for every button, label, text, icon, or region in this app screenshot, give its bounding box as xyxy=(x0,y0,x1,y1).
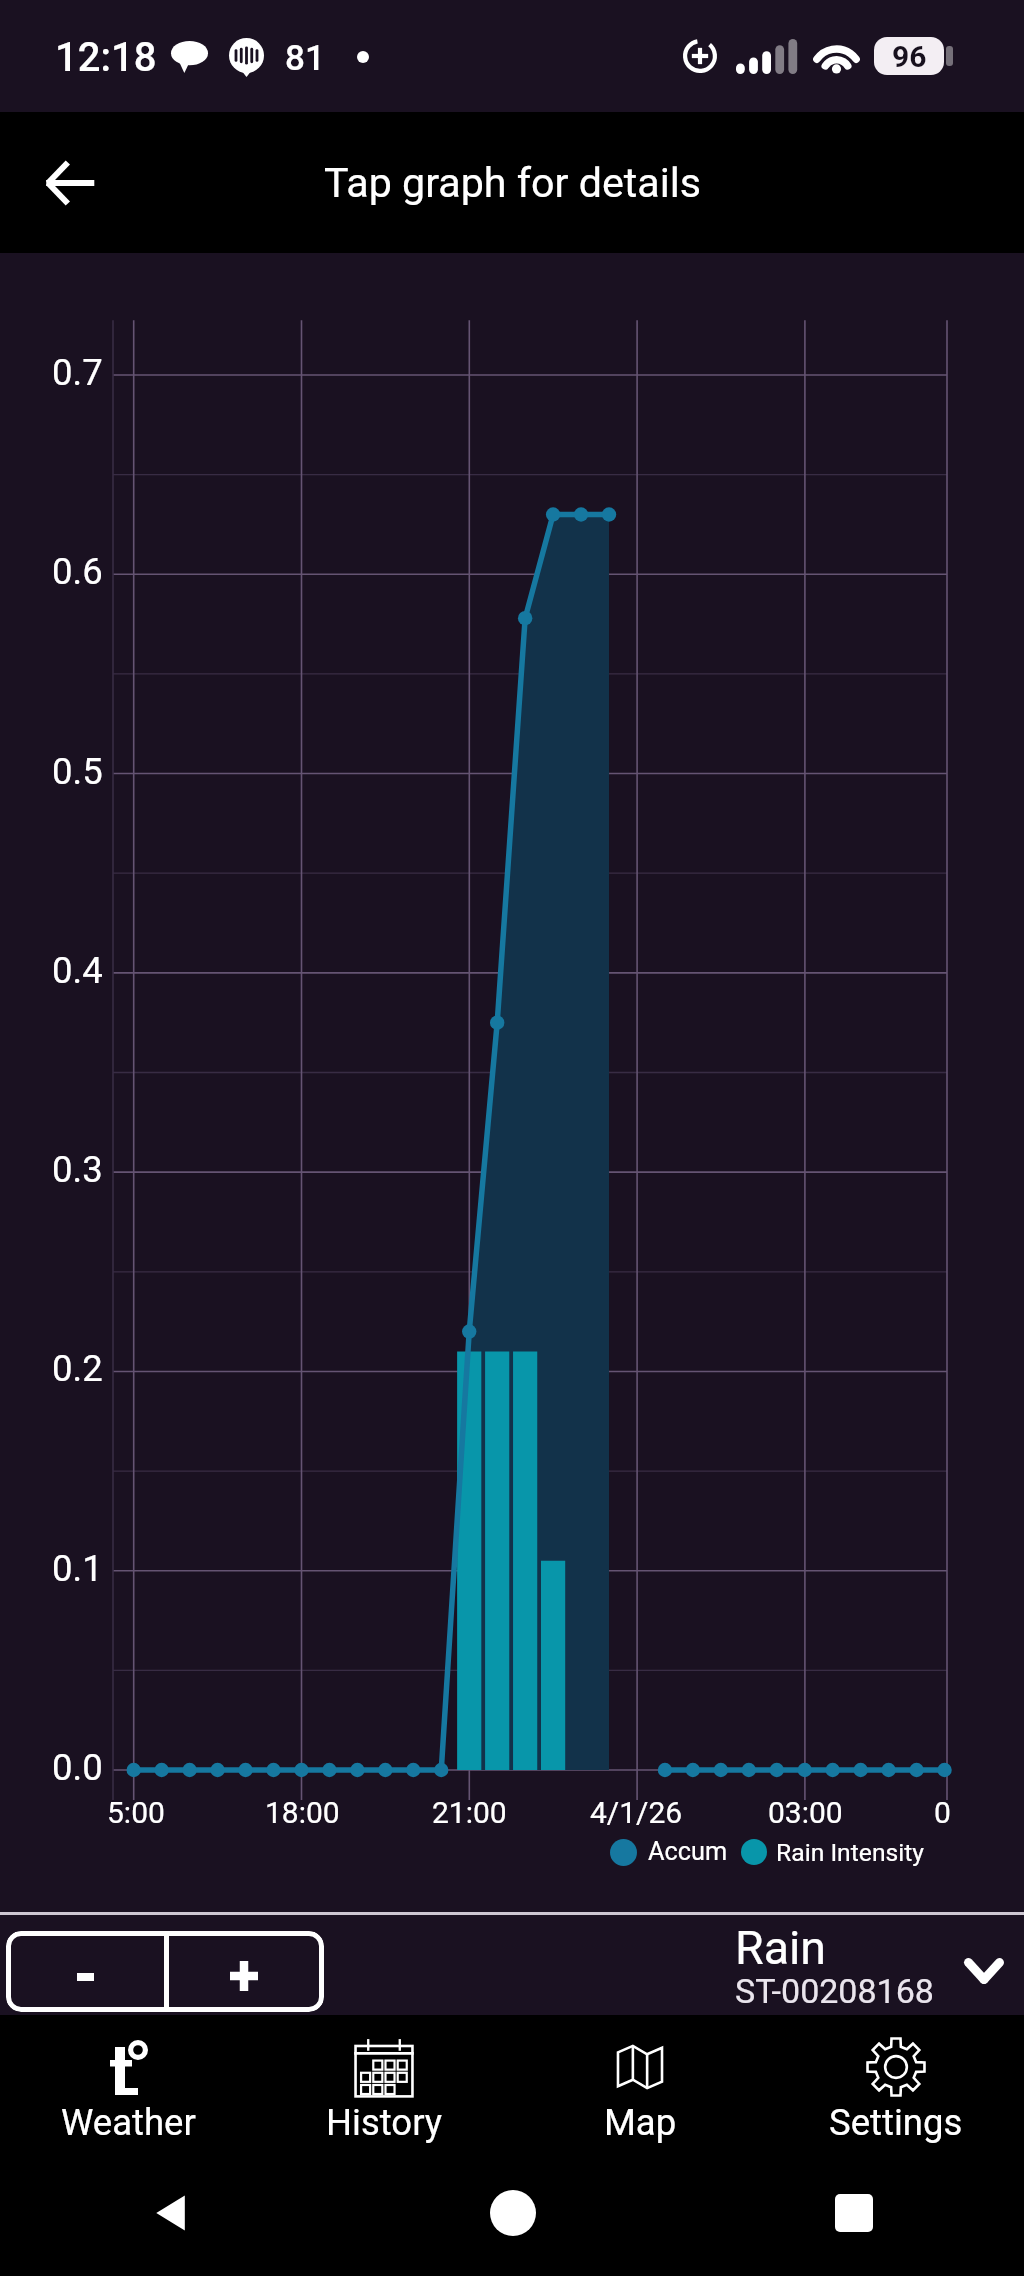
button[interactable]: Increase xyxy=(169,1931,324,2012)
button[interactable]: History xyxy=(256,2015,512,2150)
button[interactable]: Map xyxy=(512,2015,768,2150)
staticText: Weather xyxy=(61,2101,196,2144)
staticText: 4/1/26 xyxy=(590,1795,683,1830)
staticText: Tap graph for details xyxy=(324,159,701,207)
staticText: 96 xyxy=(892,39,927,74)
staticText: History xyxy=(326,2101,443,2144)
button[interactable]: Settings xyxy=(768,2015,1024,2150)
button[interactable]: Rain xyxy=(730,1918,1016,2015)
button[interactable]: Home xyxy=(342,2150,683,2276)
staticText: Accum xyxy=(648,1837,728,1867)
staticText: 18:00 xyxy=(265,1795,340,1830)
staticText: 0 xyxy=(934,1795,951,1830)
staticText: Settings xyxy=(829,2101,963,2144)
staticText: Rain xyxy=(735,1921,826,1975)
staticText: 12:18 xyxy=(55,34,157,81)
staticText: 0.3 xyxy=(52,1148,103,1191)
staticText: 0.2 xyxy=(52,1347,103,1390)
staticText: Map xyxy=(604,2101,677,2144)
staticText: 0.4 xyxy=(52,949,103,992)
button[interactable]: Decrease xyxy=(6,1931,164,2012)
button[interactable]: Weather xyxy=(0,2015,256,2150)
staticText: 21:00 xyxy=(432,1795,507,1830)
staticText: 0.5 xyxy=(52,750,103,793)
staticText: 81 xyxy=(285,38,325,79)
staticText: 0.1 xyxy=(52,1547,103,1590)
button[interactable]: Back xyxy=(0,2150,342,2276)
staticText: 0.0 xyxy=(52,1746,103,1789)
staticText: Rain Intensity xyxy=(776,1838,925,1867)
staticText: 03:00 xyxy=(768,1795,843,1830)
staticText: 0.7 xyxy=(52,351,103,394)
button[interactable]: Back xyxy=(24,137,116,229)
staticText: ST-00208168 xyxy=(735,1971,934,2011)
staticText: 5:00 xyxy=(107,1795,165,1830)
button[interactable]: Recent apps xyxy=(683,2150,1024,2276)
staticText: 0.6 xyxy=(52,550,103,593)
